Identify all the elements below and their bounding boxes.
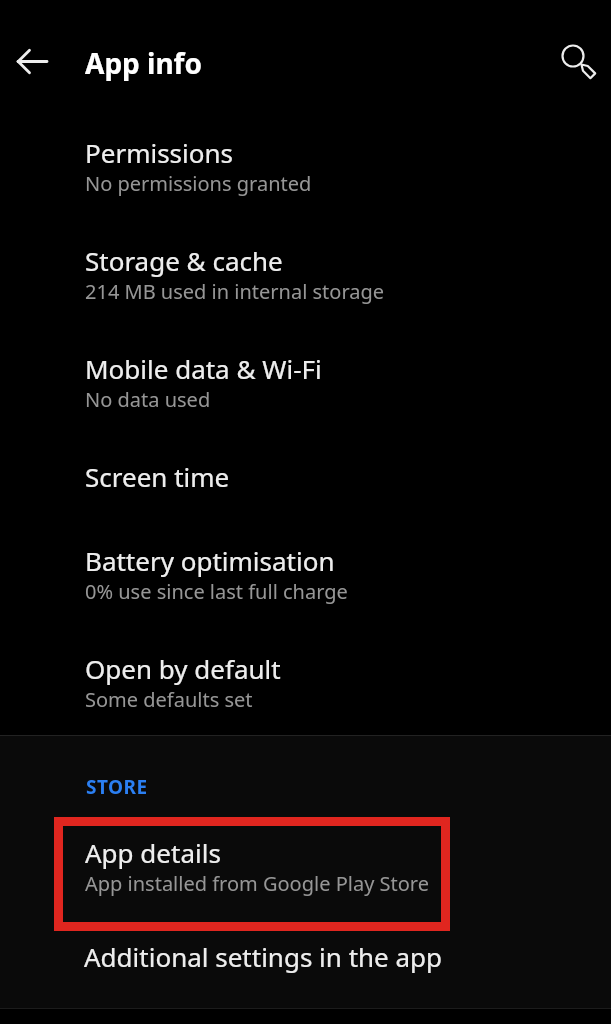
staticText: App installed from Google Play Store <box>85 870 429 897</box>
button[interactable]: App details <box>0 809 611 919</box>
staticText: App details <box>85 835 221 869</box>
button[interactable]: Screen time <box>0 432 611 516</box>
button[interactable]: Permissions <box>0 108 611 216</box>
staticText: Additional settings in the app <box>84 939 443 973</box>
button[interactable]: Storage & cache <box>0 216 611 324</box>
staticText: No data used <box>85 386 211 413</box>
staticText: Battery optimisation <box>85 543 335 577</box>
staticText: Screen time <box>85 459 230 493</box>
staticText: Storage & cache <box>85 243 283 277</box>
button[interactable]: Open by default <box>0 624 611 732</box>
button[interactable]: Battery optimisation <box>0 516 611 624</box>
button[interactable] <box>549 32 597 80</box>
staticText: 0% use since last full charge <box>85 578 348 605</box>
button[interactable]: Mobile data & Wi-Fi <box>0 324 611 432</box>
button[interactable] <box>8 38 56 86</box>
staticText: Permissions <box>85 135 234 169</box>
button[interactable]: Additional settings in the app <box>0 919 611 1008</box>
staticText: Some defaults set <box>85 686 253 713</box>
staticText: Mobile data & Wi-Fi <box>85 351 322 385</box>
staticText: App info <box>85 44 202 82</box>
staticText: STORE <box>86 774 148 800</box>
staticText: No permissions granted <box>85 170 312 197</box>
staticText: Open by default <box>85 651 281 685</box>
staticText: 214 MB used in internal storage <box>85 278 385 305</box>
